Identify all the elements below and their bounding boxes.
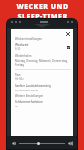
button[interactable]: Weckzeit [15,43,71,51]
button[interactable]: Lautstärke [19,140,65,146]
staticText: Weckzeit [15,43,29,47]
button[interactable]: Ton [15,73,71,81]
staticText: Weitere Einstellungen [15,94,44,98]
staticText: WECKER UND [16,2,69,12]
staticText: Montag, Dienstag, Mittwoch, Donnerstag, … [15,59,71,66]
button[interactable]: Schließen [64,30,71,37]
staticText: Hit Mix [15,77,24,81]
button[interactable]: Leiser [11,140,17,146]
button[interactable]: Sanfter Lautstärkeanstieg [15,84,71,91]
staticText: SLEEP-TIMER [17,12,68,22]
staticText: Sanfter Lautstärkeanstieg [15,84,51,88]
staticText: 60 Sekunden Dauer [15,88,39,91]
staticText: Weckereinstellungen [15,37,43,41]
button[interactable]: Schlummerfunktion [15,100,71,107]
staticText: Wiederholen [15,54,32,58]
staticText: 6:30 [15,47,21,51]
button[interactable]: Lauter [67,140,73,146]
staticText: Ton [15,73,21,77]
staticText: An [15,104,19,107]
button[interactable]: Montag, Dienstag, Mittwoch, Donnerstag, … [15,59,71,66]
staticText: Schlummerfunktion [15,100,43,104]
